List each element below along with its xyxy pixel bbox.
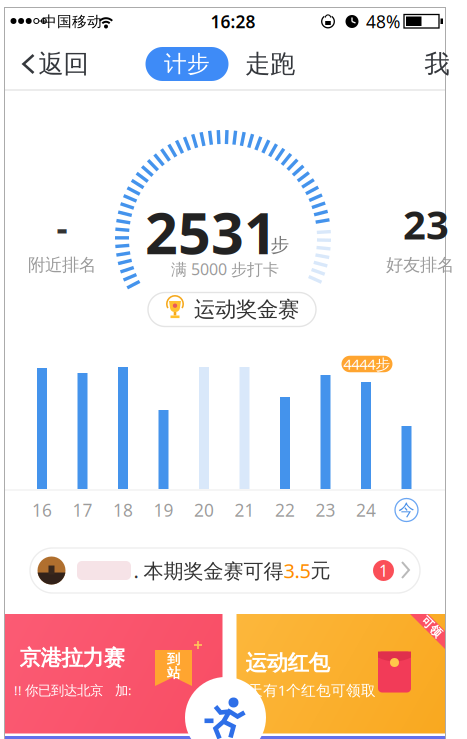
staticText: 元 [310, 558, 330, 583]
staticText: 好友排名 [386, 254, 454, 276]
staticText: 3.5 [283, 557, 310, 584]
staticText: 运动红包 [245, 650, 329, 676]
staticText: 22 [275, 498, 295, 521]
staticText: 2531 [145, 194, 277, 270]
button[interactable]: . 本期奖金赛可得 [30, 548, 420, 593]
staticText: 48% [366, 10, 400, 33]
staticText: 满 5000 步打卡 [171, 258, 279, 280]
button[interactable]: 我 [424, 48, 449, 79]
staticText: 16 [32, 498, 52, 521]
button[interactable]: 返回 [21, 48, 88, 79]
staticText: 可领 [419, 620, 443, 634]
button[interactable]: 走跑 [245, 48, 295, 79]
staticText: 附近排名 [28, 254, 96, 276]
staticText: 站 [167, 665, 180, 681]
staticText: 4444步 [343, 354, 390, 374]
staticText: 返回 [38, 48, 88, 79]
button[interactable]: 运动奖金赛 [148, 292, 316, 326]
staticText: 23 [315, 498, 335, 521]
button[interactable]: 今 [395, 498, 418, 521]
staticText: 24 [356, 498, 376, 521]
staticText: 21 [234, 498, 254, 521]
staticText: . 本期奖金赛可得 [133, 557, 283, 584]
staticText: 今天有1个红包可领取 [233, 680, 376, 700]
staticText: 步 [270, 233, 289, 256]
staticText: 17 [72, 498, 92, 521]
button[interactable]: 运动红包 [236, 614, 445, 734]
staticText: 走跑 [245, 48, 295, 79]
staticText: 中国移动 [42, 12, 102, 30]
staticText: 计步 [164, 50, 210, 78]
staticText: 我 [424, 48, 449, 79]
staticText: 18 [113, 498, 133, 521]
staticText: 今 [398, 500, 414, 520]
staticText: 19 [153, 498, 173, 521]
staticText: 1 [379, 560, 388, 581]
staticText: 到 [167, 651, 180, 667]
staticText: - [56, 204, 67, 250]
button[interactable]: 京港拉力赛 [5, 614, 222, 734]
staticText: 23 [403, 197, 449, 250]
staticText: 京港拉力赛 [19, 645, 124, 671]
staticText: 16:28 [210, 10, 255, 33]
button[interactable]: 开始运动 [185, 677, 266, 739]
button[interactable]: 计步 [145, 47, 228, 81]
staticText: 运动奖金赛 [194, 296, 299, 323]
staticText: !! 你已到达北京 加: [14, 681, 132, 699]
staticText: 20 [194, 498, 214, 521]
